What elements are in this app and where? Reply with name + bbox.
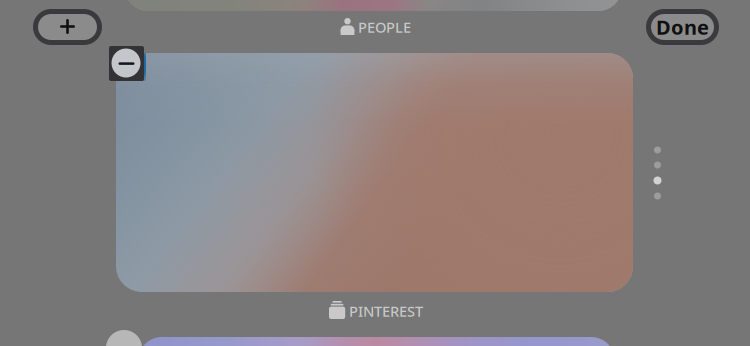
staticText: Done [656,14,709,40]
staticText: PINTEREST [349,301,423,321]
button[interactable]: Add Widget [33,9,102,45]
button[interactable]: Done [646,9,719,45]
button[interactable]: Remove Widget [106,330,142,346]
button[interactable]: Remove Widget [109,46,144,81]
staticText: PEOPLE [358,17,411,37]
